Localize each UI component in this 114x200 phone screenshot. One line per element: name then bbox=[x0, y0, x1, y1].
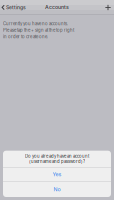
staticText: Do you already have an account bbox=[25, 154, 89, 159]
staticText: Settings bbox=[6, 4, 26, 10]
staticText: (username and password)? bbox=[29, 159, 85, 164]
staticText: Currently you have no accounts. bbox=[3, 21, 68, 26]
staticText: No bbox=[53, 186, 60, 192]
staticText: in order to create one. bbox=[3, 34, 48, 39]
button[interactable]: Add account bbox=[102, 0, 114, 15]
staticText: Accounts bbox=[45, 4, 69, 10]
button[interactable]: Settings bbox=[0, 0, 29, 15]
button[interactable]: No bbox=[3, 181, 111, 197]
staticText: Please tap the + sign at the top right bbox=[3, 28, 74, 33]
staticText: Yes bbox=[52, 171, 61, 177]
button[interactable]: Yes bbox=[3, 167, 111, 181]
